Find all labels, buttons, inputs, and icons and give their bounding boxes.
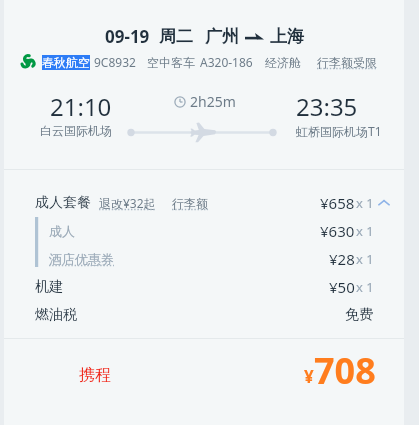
staticText: 行李额 bbox=[172, 196, 208, 211]
staticText: 退改¥32起 bbox=[99, 195, 156, 211]
staticText: ¥ bbox=[304, 365, 314, 388]
staticText: ¥658 bbox=[320, 193, 355, 213]
staticText: x 1 bbox=[356, 278, 374, 296]
staticText: 行李额受限 bbox=[317, 55, 377, 70]
staticText: 空中客车 bbox=[147, 55, 195, 70]
staticText: x 1 bbox=[356, 222, 374, 240]
staticText: 机建 bbox=[35, 278, 63, 296]
staticText: 燃油税 bbox=[35, 306, 77, 324]
staticText: ¥28 bbox=[329, 249, 355, 269]
staticText: 携程 bbox=[79, 365, 111, 385]
staticText: 经济舱 bbox=[265, 55, 301, 70]
staticText: 成人套餐 bbox=[35, 194, 91, 212]
staticText: 白云国际机场 bbox=[40, 123, 112, 138]
button[interactable]: 机建 bbox=[4, 273, 404, 301]
staticText: 广州 bbox=[205, 26, 239, 47]
staticText: 成人 bbox=[49, 223, 75, 239]
button[interactable]: 成人套餐 bbox=[4, 189, 404, 217]
staticText: 21:10 bbox=[50, 90, 112, 123]
staticText: x 1 bbox=[356, 194, 374, 212]
staticText: 2h25m bbox=[190, 92, 236, 111]
staticText: A320-186 bbox=[200, 54, 253, 70]
staticText: 免费 bbox=[345, 306, 373, 324]
staticText: x 1 bbox=[356, 250, 374, 268]
staticText: 周二 bbox=[159, 26, 193, 47]
staticText: 上海 bbox=[270, 26, 304, 47]
staticText: ¥630 bbox=[320, 221, 355, 241]
staticText: 酒店优惠券 bbox=[49, 251, 114, 267]
staticText: 23:35 bbox=[296, 90, 358, 123]
staticText: ¥50 bbox=[329, 277, 355, 297]
staticText: 9C8932 bbox=[94, 54, 136, 70]
staticText: 春秋航空 bbox=[42, 55, 90, 70]
staticText: 虹桥国际机场T1 bbox=[296, 123, 382, 139]
staticText: 09-19 bbox=[105, 25, 150, 48]
staticText: 708 bbox=[314, 346, 376, 395]
